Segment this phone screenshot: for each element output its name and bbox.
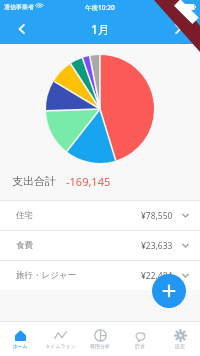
staticText: 支出合計: [12, 174, 56, 188]
button[interactable]: 住宅: [0, 201, 200, 230]
staticText: ホーム: [12, 343, 28, 349]
staticText: タイムライン: [45, 343, 76, 349]
button[interactable]: 貯金: [120, 329, 160, 349]
button[interactable]: Next month: [166, 17, 190, 41]
staticText: 貯金: [135, 343, 145, 349]
staticText: 旅行・レジャー: [16, 270, 77, 281]
staticText: -169,145: [66, 174, 111, 189]
staticText: 費用分析: [90, 343, 110, 349]
staticText: 住宅: [16, 210, 33, 221]
staticText: ¥23,633: [141, 240, 173, 252]
staticText: 食費: [16, 240, 33, 251]
staticText: ¥22,484: [141, 270, 173, 282]
staticText: 設定: [175, 343, 185, 349]
button[interactable]: Add: [152, 274, 186, 308]
button[interactable]: タイムライン: [40, 329, 80, 349]
button[interactable]: 設定: [160, 329, 200, 349]
staticText: 通信事業者: [4, 3, 34, 11]
button[interactable]: 食費: [0, 231, 200, 260]
staticText: 午後10:20: [85, 3, 115, 12]
staticText: ¥78,550: [141, 210, 173, 222]
button[interactable]: 旅行・レジャー: [0, 261, 200, 290]
button[interactable]: Previous month: [10, 17, 34, 41]
button[interactable]: 費用分析: [80, 329, 120, 349]
staticText: 1月: [91, 21, 110, 37]
button[interactable]: ホーム: [0, 329, 40, 349]
